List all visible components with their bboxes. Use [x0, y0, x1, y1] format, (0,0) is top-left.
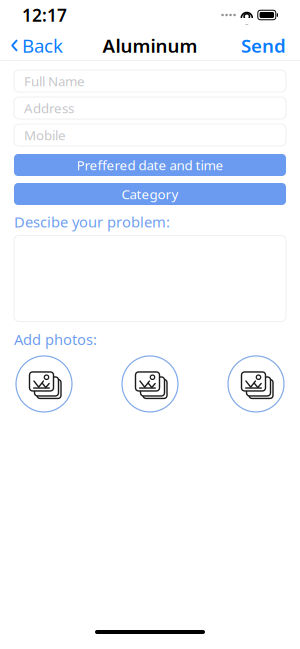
button[interactable]: Add photo: [122, 356, 178, 412]
button[interactable]: Preffered date and time: [0, 154, 300, 176]
staticText: Full Name: [24, 72, 85, 90]
staticText: 12:17: [22, 3, 67, 26]
button[interactable]: Send: [241, 27, 300, 64]
staticText: Add photos:: [14, 329, 97, 349]
staticText: Mobile: [24, 126, 66, 144]
staticText: Aluminum: [102, 33, 197, 58]
staticText: Back: [22, 33, 63, 58]
button[interactable]: Category: [0, 183, 300, 205]
button[interactable]: Back: [0, 27, 63, 64]
staticText: Descibe your problem:: [14, 212, 170, 231]
button[interactable]: Add photo: [16, 356, 72, 412]
button[interactable]: Add photo: [228, 356, 284, 412]
staticText: Send: [241, 33, 286, 58]
staticText: Address: [24, 99, 74, 117]
staticText: Category: [121, 185, 178, 203]
staticText: Preffered date and time: [76, 156, 223, 174]
